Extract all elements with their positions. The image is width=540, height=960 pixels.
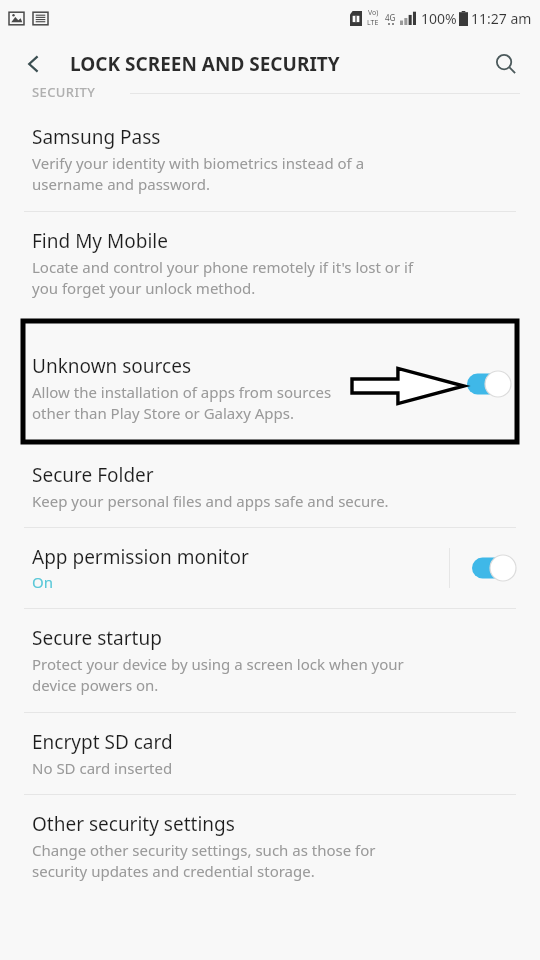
staticText: Find My Mobile [32,228,168,254]
staticText: No SD card inserted [32,758,173,778]
staticText: Allow the installation of apps from sour… [32,382,332,424]
staticText: App permission monitor [32,544,249,570]
button[interactable]: App permission monitor [0,528,540,608]
staticText: Other security settings [32,811,235,837]
staticText: On [32,572,53,592]
staticText: 100% [421,9,457,28]
button[interactable]: Encrypt SD card [0,713,540,794]
staticText: Change other security settings, such as … [32,840,376,882]
staticText: SECURITY [32,83,96,99]
staticText: Secure startup [32,625,162,651]
staticText: Unknown sources [32,353,191,379]
staticText: Verify your identity with biometrics ins… [32,153,365,195]
button[interactable]: Find My Mobile [0,212,540,315]
staticText: Secure Folder [32,462,154,488]
button[interactable]: Unknown sources toggle [467,371,511,397]
staticText: 4G [385,12,396,23]
staticText: 11:27 am [471,9,532,28]
button[interactable]: App permission monitor toggle [468,551,520,585]
button[interactable]: Unknown sources [23,339,517,424]
button[interactable]: Secure Folder [0,448,540,527]
staticText: Encrypt SD card [32,729,173,755]
staticText: Keep your personal files and apps safe a… [32,491,389,511]
button[interactable]: Search [482,40,530,88]
button[interactable]: Back [10,40,58,88]
staticText: LOCK SCREEN AND SECURITY [70,51,340,77]
button[interactable]: Samsung Pass [0,108,540,211]
staticText: Vo) [368,8,379,18]
staticText: Samsung Pass [32,124,161,150]
button[interactable]: Other security settings [0,795,540,898]
staticText: Locate and control your phone remotely i… [32,257,414,299]
button[interactable]: Secure startup [0,609,540,712]
staticText: LTE [367,18,379,28]
staticText: Protect your device by using a screen lo… [32,654,404,696]
